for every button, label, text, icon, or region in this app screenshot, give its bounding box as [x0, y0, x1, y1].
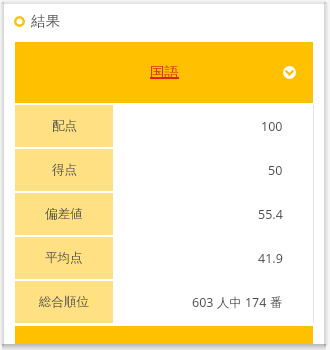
staticText: 国語 — [150, 63, 179, 81]
button[interactable]: 偏差値 — [15, 193, 313, 235]
staticText: 総合順位 — [39, 294, 89, 310]
button[interactable]: 得点 — [15, 149, 313, 191]
staticText: 結果 — [31, 12, 60, 30]
staticText: 55.4 — [258, 206, 283, 223]
staticText: 50 — [268, 162, 283, 179]
button[interactable]: 配点 — [15, 105, 313, 147]
button[interactable]: 総合順位 — [15, 281, 313, 323]
staticText: 平均点 — [45, 250, 83, 266]
staticText: 偏差値 — [45, 206, 83, 222]
staticText: 603 人中 174 番 — [192, 294, 283, 311]
button[interactable]: 平均点 — [15, 237, 313, 279]
staticText: 配点 — [52, 118, 77, 134]
button[interactable]: 国語 — [15, 42, 313, 103]
staticText: 100 — [261, 118, 283, 135]
staticText: 41.9 — [258, 250, 283, 267]
staticText: 得点 — [52, 162, 77, 178]
button[interactable]: Expand subject — [283, 66, 296, 79]
